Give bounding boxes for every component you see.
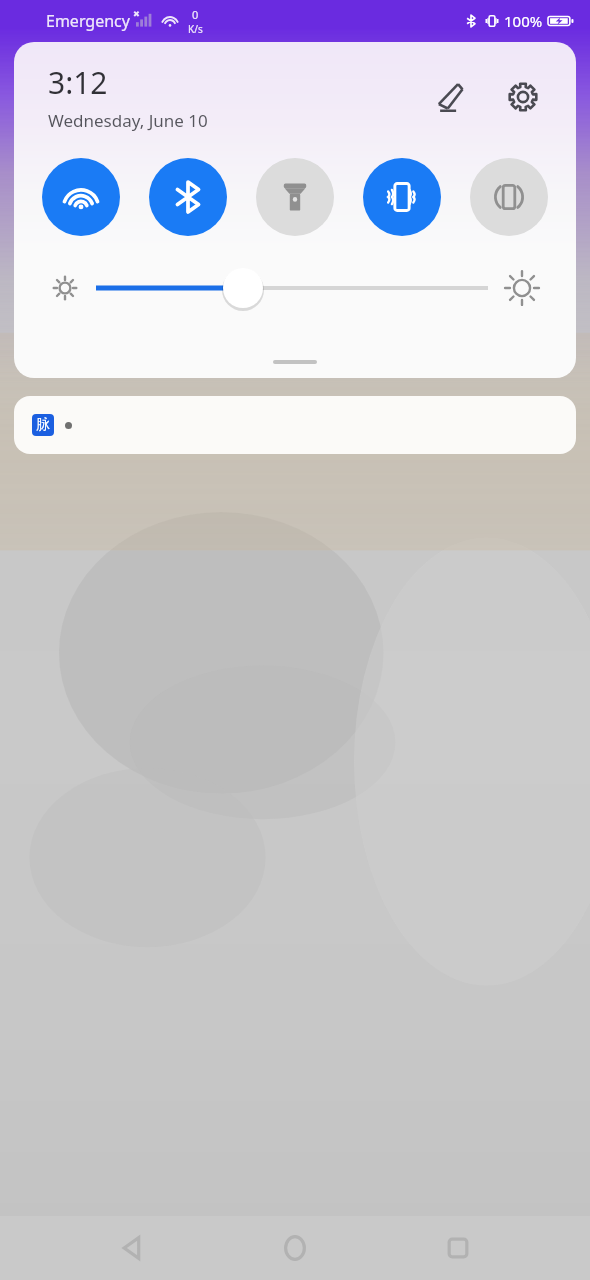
- staticText: 脉: [36, 416, 50, 434]
- staticText: Emergency: [46, 10, 130, 32]
- staticText: 0: [192, 7, 199, 22]
- button[interactable]: Home: [265, 1218, 325, 1278]
- button[interactable]: Vibrate: [363, 158, 441, 236]
- button[interactable]: Brightness: [82, 264, 502, 312]
- staticText: 100%: [504, 11, 543, 31]
- button[interactable]: Recent apps: [428, 1218, 488, 1278]
- button[interactable]: Wi-Fi: [42, 158, 120, 236]
- staticText: 3:12: [48, 62, 108, 103]
- staticText: K/s: [188, 22, 203, 36]
- button[interactable]: Back: [103, 1218, 163, 1278]
- button[interactable]: Settings: [498, 72, 548, 122]
- button[interactable]: Flashlight: [256, 158, 334, 236]
- button[interactable]: Ring mode: [470, 158, 548, 236]
- staticText: Wednesday, June 10: [48, 109, 208, 132]
- button[interactable]: Bluetooth: [149, 158, 227, 236]
- button[interactable]: Edit quick settings: [426, 72, 476, 122]
- button[interactable]: 脉: [14, 396, 576, 454]
